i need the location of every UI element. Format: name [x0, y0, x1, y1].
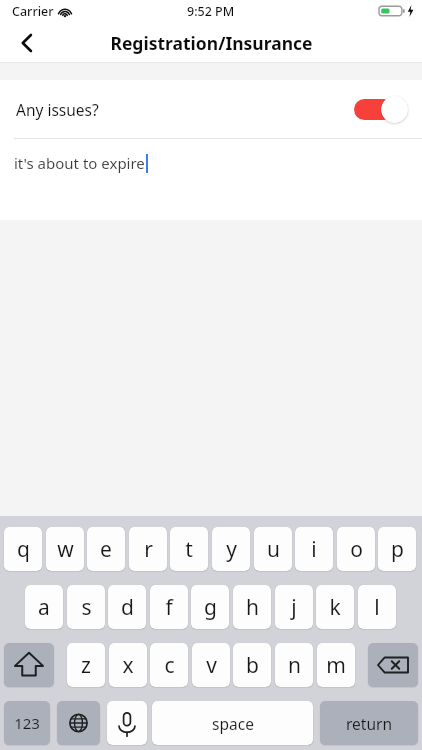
staticText: w [57, 535, 74, 564]
staticText: q [17, 535, 30, 564]
button[interactable]: h [233, 585, 271, 629]
staticText: it's about to expire [14, 153, 145, 173]
button[interactable]: Shift [4, 643, 54, 687]
button[interactable]: u [254, 527, 292, 571]
button[interactable]: c [150, 643, 188, 687]
button[interactable]: l [358, 585, 396, 629]
button[interactable]: w [46, 527, 84, 571]
button[interactable]: r [129, 527, 167, 571]
button[interactable]: Backspace [368, 643, 418, 687]
staticText: e [100, 535, 112, 564]
staticText: c [164, 651, 175, 680]
staticText: g [204, 593, 217, 622]
button[interactable]: t [170, 527, 208, 571]
staticText: f [165, 593, 173, 622]
staticText: i [311, 535, 317, 564]
button[interactable]: Back [0, 22, 54, 63]
button[interactable]: j [275, 585, 313, 629]
staticText: t [185, 535, 193, 564]
button[interactable]: s [67, 585, 105, 629]
button[interactable]: it's about to expire [0, 139, 422, 220]
staticText: j [291, 593, 297, 622]
button[interactable]: k [316, 585, 354, 629]
button[interactable]: i [295, 527, 333, 571]
staticText: space [212, 713, 254, 734]
button[interactable]: space [152, 701, 313, 745]
button[interactable]: b [233, 643, 271, 687]
button[interactable]: y [212, 527, 250, 571]
staticText: l [374, 593, 380, 622]
staticText: v [206, 651, 217, 680]
button[interactable]: f [150, 585, 188, 629]
button[interactable]: return [320, 701, 418, 745]
button[interactable]: p [378, 527, 416, 571]
staticText: u [267, 535, 280, 564]
staticText: m [326, 651, 346, 680]
staticText: p [391, 535, 404, 564]
staticText: o [350, 535, 363, 564]
button[interactable]: e [87, 527, 125, 571]
staticText: 123 [14, 713, 40, 733]
button[interactable]: a [25, 585, 63, 629]
button[interactable]: v [192, 643, 230, 687]
staticText: Any issues? [16, 99, 99, 120]
button[interactable]: o [337, 527, 375, 571]
staticText: z [81, 651, 91, 680]
button[interactable]: z [67, 643, 105, 687]
staticText: a [38, 593, 50, 622]
staticText: h [246, 593, 259, 622]
button[interactable]: m [317, 643, 355, 687]
button[interactable]: n [275, 643, 313, 687]
button[interactable]: 123 [4, 701, 50, 745]
staticText: x [122, 651, 134, 680]
staticText: k [329, 593, 341, 622]
button[interactable]: Next keyboard [57, 701, 100, 745]
staticText: d [121, 593, 134, 622]
staticText: s [81, 593, 92, 622]
button[interactable]: q [4, 527, 42, 571]
staticText: 9:52 PM [187, 3, 235, 20]
button[interactable]: x [109, 643, 147, 687]
staticText: b [246, 651, 259, 680]
staticText: n [288, 651, 301, 680]
staticText: return [346, 713, 392, 734]
staticText: r [144, 535, 153, 564]
staticText: y [226, 535, 237, 564]
staticText: Carrier [12, 3, 54, 20]
button[interactable]: Any issues? [0, 80, 422, 138]
button[interactable]: d [108, 585, 146, 629]
button[interactable]: g [191, 585, 229, 629]
button[interactable]: Dictation [107, 701, 147, 745]
staticText: Registration/Insurance [110, 31, 313, 55]
